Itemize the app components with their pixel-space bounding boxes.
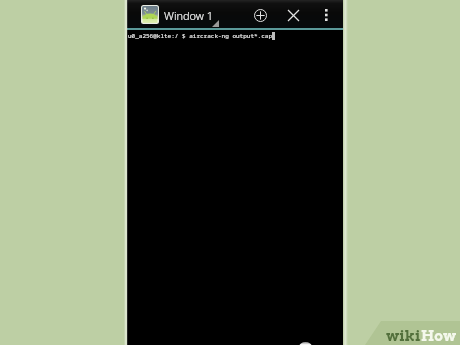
button[interactable]: New window bbox=[246, 1, 274, 29]
button[interactable]: Close window bbox=[279, 1, 307, 29]
button[interactable]: More options bbox=[312, 1, 340, 29]
staticText: wiki bbox=[386, 327, 421, 344]
staticText: u0_a256@klte:/ $ aircrack-ng output*.cap bbox=[128, 32, 273, 40]
staticText: How bbox=[421, 327, 457, 344]
button[interactable]: Window 1 bbox=[164, 0, 220, 28]
staticText: Window 1 bbox=[164, 8, 214, 23]
